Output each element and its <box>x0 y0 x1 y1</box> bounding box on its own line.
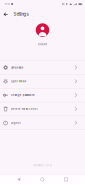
button[interactable]: Back <box>1 8 11 21</box>
staticText: Client <box>38 43 47 46</box>
button[interactable]: Logout <box>0 116 85 130</box>
button[interactable]: Change password <box>0 88 85 102</box>
button[interactable]: Language <box>0 61 85 75</box>
button[interactable]: Home <box>38 175 47 184</box>
button[interactable]: Recent apps <box>61 175 71 184</box>
button[interactable]: Delete my account <box>0 102 85 116</box>
button[interactable]: Back <box>14 175 23 184</box>
staticText: Light mode <box>11 80 27 83</box>
staticText: 10:05 <box>4 3 9 5</box>
button[interactable]: Light mode <box>0 75 85 88</box>
staticText: Delete my account <box>11 107 38 110</box>
staticText: Settings <box>13 12 28 17</box>
staticText: Version 1.0.0 <box>33 164 52 167</box>
staticText: Language <box>11 66 24 69</box>
staticText: Change password <box>11 93 35 97</box>
staticText: Logout <box>11 121 21 124</box>
